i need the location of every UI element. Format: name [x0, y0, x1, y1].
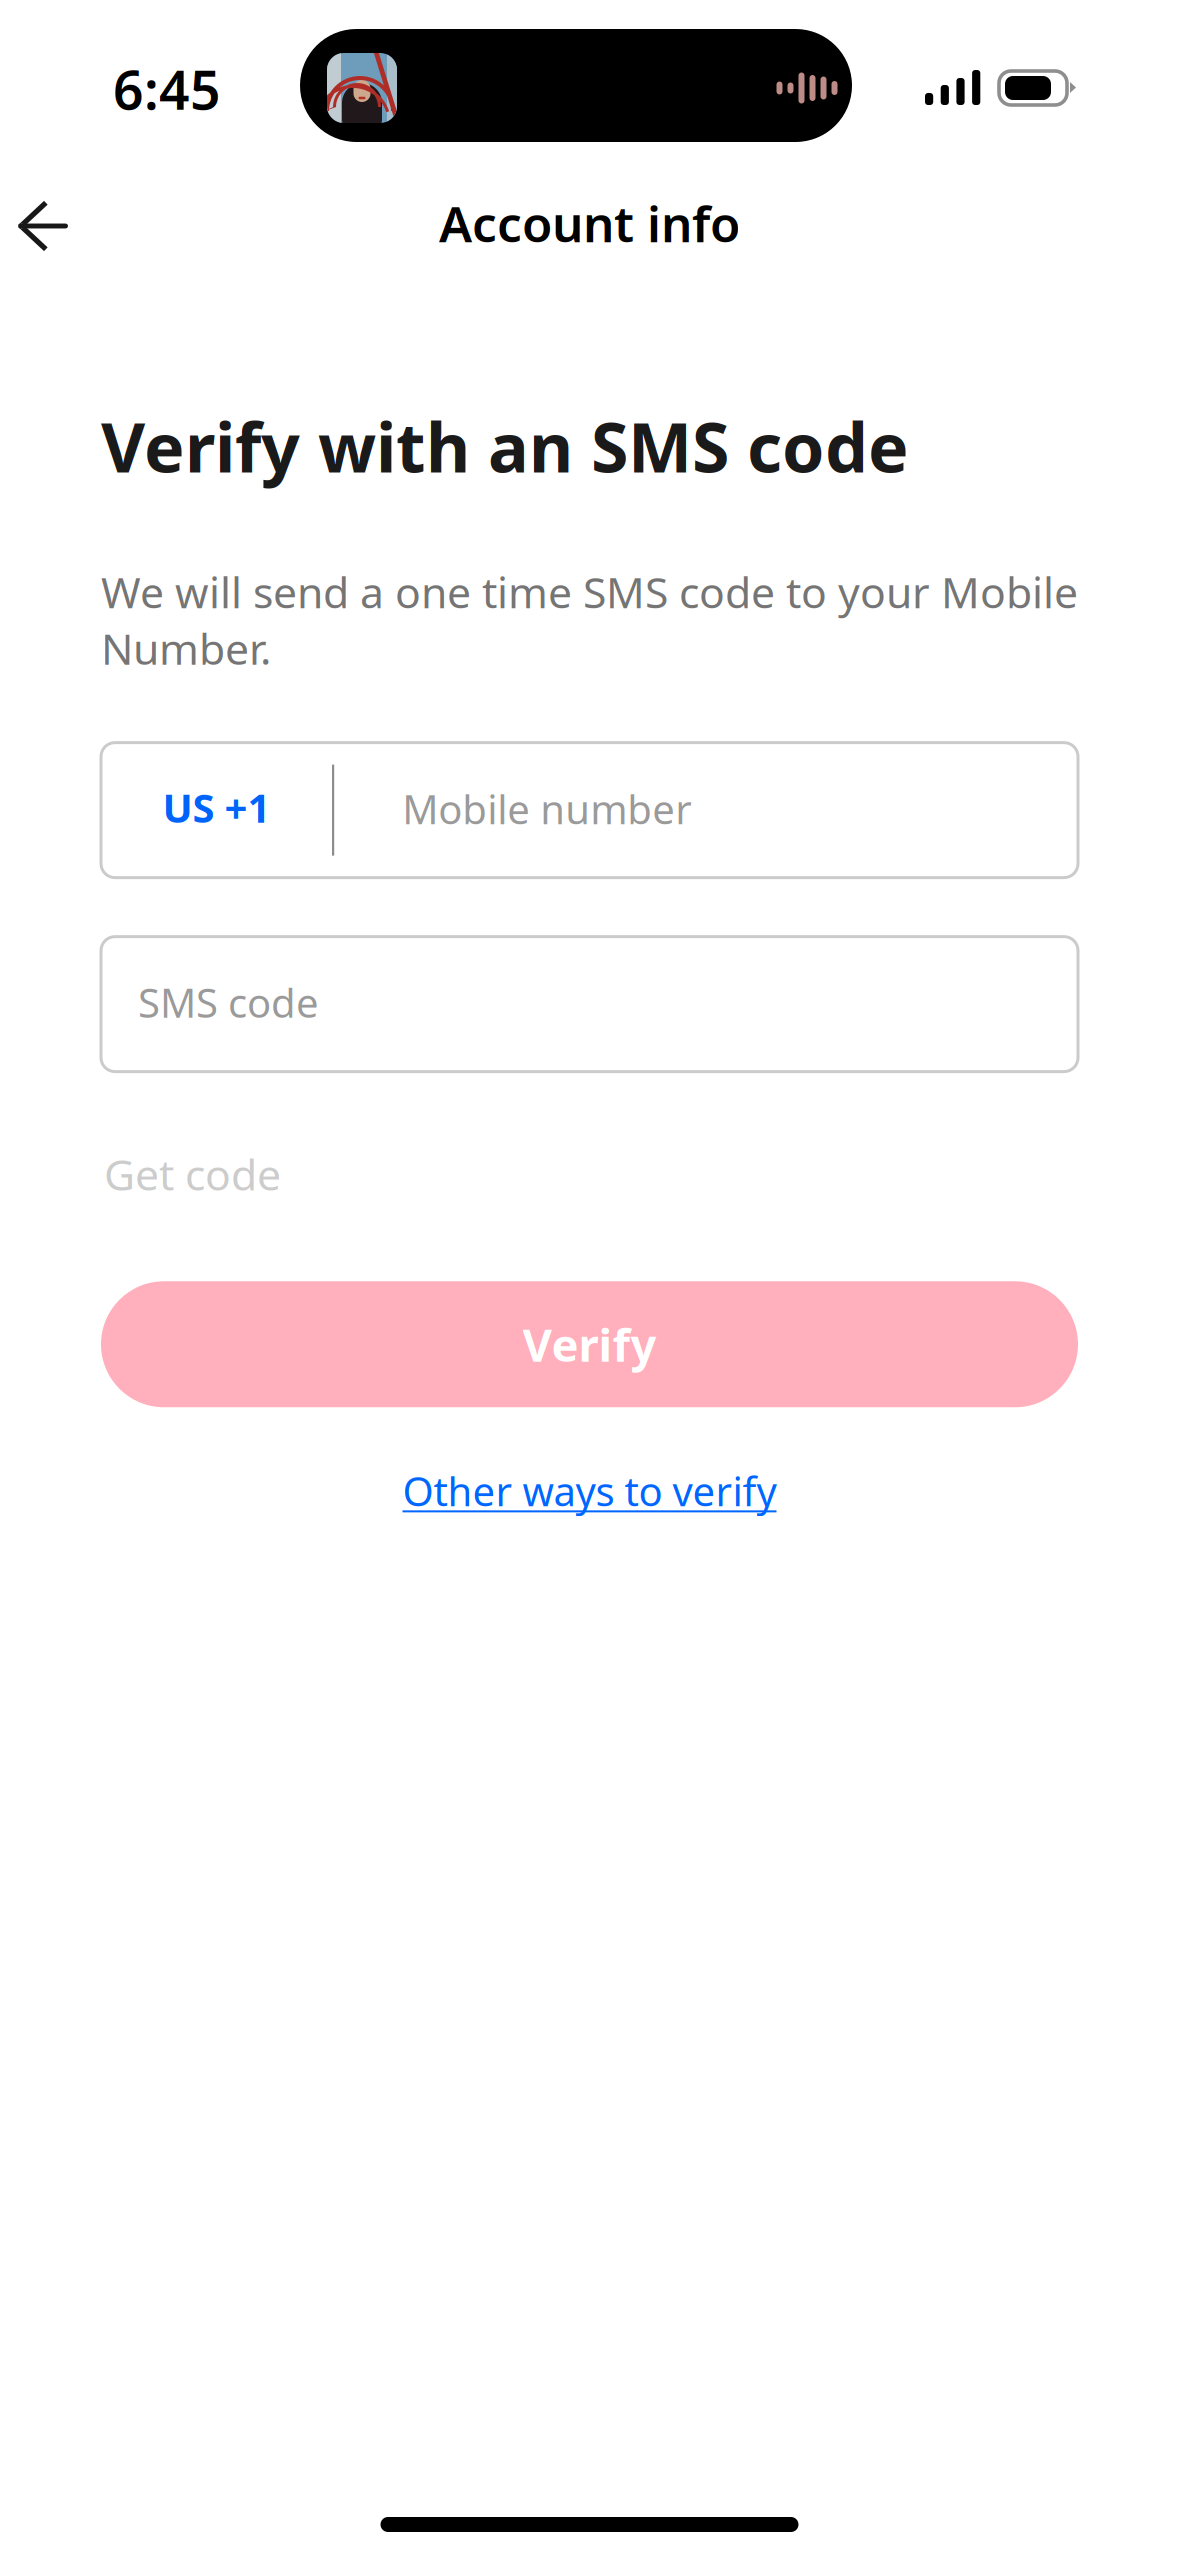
staticText: Mobile number — [402, 782, 692, 835]
staticText: US +1 — [162, 781, 270, 834]
staticText: 6:45 — [113, 54, 221, 124]
staticText: Verify with an SMS code — [101, 401, 909, 491]
button[interactable]: Get code — [101, 1142, 281, 1206]
staticText: Account info — [439, 190, 740, 256]
staticText: Other ways to verify — [402, 1464, 776, 1517]
button[interactable]: Other ways to verify — [101, 1458, 1078, 1523]
button[interactable]: US +1 — [101, 784, 332, 837]
button[interactable]: Verify — [101, 1281, 1078, 1407]
staticText: Get code — [104, 1146, 281, 1202]
staticText: SMS code — [138, 976, 319, 1029]
staticText: Verify — [522, 1314, 656, 1374]
button[interactable]: Back — [0, 176, 96, 269]
staticText: We will send a one time SMS code to your… — [101, 563, 1078, 677]
